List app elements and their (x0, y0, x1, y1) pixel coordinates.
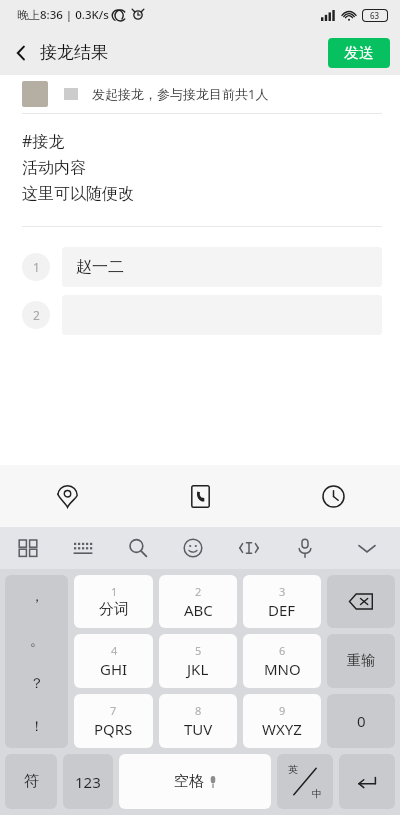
button[interactable]: 1 (74, 575, 153, 628)
button[interactable]: Backspace (327, 575, 395, 628)
staticText: 。 (30, 632, 44, 650)
staticText: 发起接龙，参与接龙目前共1人 (92, 85, 269, 103)
staticText: 4 (111, 643, 118, 658)
staticText: 接龙结果 (40, 42, 108, 63)
button[interactable]: ， (5, 575, 68, 619)
staticText: 中 (312, 787, 322, 800)
staticText: 63 (370, 10, 380, 21)
button[interactable]: Clipboard (221, 527, 277, 569)
button[interactable]: ？ (5, 662, 68, 705)
staticText: #接龙 (22, 130, 65, 152)
staticText: ABC (184, 600, 213, 620)
staticText: 2 (33, 307, 40, 323)
staticText: GHI (100, 659, 128, 679)
staticText: JKL (187, 659, 209, 679)
button[interactable]: Apps (0, 527, 55, 569)
staticText: 9 (279, 703, 286, 718)
staticText: 发送 (344, 44, 374, 63)
button[interactable]: 重输 (327, 634, 395, 688)
staticText: 这里可以随便改 (22, 184, 134, 204)
staticText: DEF (268, 600, 296, 620)
button[interactable]: 6 (243, 634, 321, 688)
staticText: 空格 (174, 772, 204, 791)
staticText: 重输 (347, 652, 375, 670)
button[interactable]: Enter (339, 754, 395, 809)
button[interactable]: Switch language (277, 754, 333, 809)
staticText: 123 (75, 772, 101, 792)
staticText: 赵一二 (76, 257, 124, 277)
staticText: 3 (279, 584, 286, 599)
staticText: 2 (195, 584, 202, 599)
button[interactable]: Search (110, 527, 165, 569)
button[interactable]: 7 (74, 694, 153, 748)
staticText: 1 (33, 259, 40, 275)
button[interactable]: 2 (159, 575, 237, 628)
button[interactable]: Phone (134, 465, 267, 527)
staticText: ？ (30, 675, 44, 693)
button[interactable]: Voice input (277, 527, 333, 569)
staticText: 6 (279, 643, 286, 658)
button[interactable]: 1 (22, 247, 382, 287)
button[interactable]: 3 (243, 575, 321, 628)
button[interactable]: 8 (159, 694, 237, 748)
staticText: TUV (184, 719, 213, 739)
button[interactable]: 符 (5, 754, 57, 809)
staticText: 1 (111, 584, 118, 599)
staticText: 5 (195, 643, 202, 658)
staticText: 0 (357, 711, 366, 731)
button[interactable]: Hide keyboard (333, 527, 400, 569)
button[interactable]: 2 (22, 295, 382, 335)
staticText: 符 (24, 772, 39, 791)
staticText: 活动内容 (22, 158, 86, 178)
button[interactable]: 空格 (119, 754, 271, 809)
button[interactable]: 0 (327, 694, 395, 748)
button[interactable]: 123 (63, 754, 113, 809)
button[interactable]: 4 (74, 634, 153, 688)
staticText: 7 (110, 703, 117, 718)
button[interactable]: Back (0, 32, 42, 74)
staticText: 晚上8:36 | 0.3K/s (17, 7, 109, 23)
staticText: MNO (264, 659, 301, 679)
button[interactable]: 9 (243, 694, 321, 748)
button[interactable]: ！ (5, 705, 68, 748)
button[interactable]: 。 (5, 619, 68, 662)
staticText: ， (30, 588, 44, 606)
button[interactable]: 5 (159, 634, 237, 688)
staticText: ！ (30, 718, 44, 736)
staticText: 8 (195, 703, 202, 718)
staticText: PQRS (94, 719, 133, 739)
button[interactable]: Location (0, 465, 134, 527)
button[interactable]: Emoji (165, 527, 221, 569)
staticText: WXYZ (262, 719, 302, 739)
button[interactable]: Time (267, 465, 400, 527)
staticText: 英 (288, 763, 298, 776)
staticText: 分词 (99, 600, 129, 619)
button[interactable]: Keyboard layout (55, 527, 110, 569)
button[interactable]: 发送 (328, 38, 390, 68)
